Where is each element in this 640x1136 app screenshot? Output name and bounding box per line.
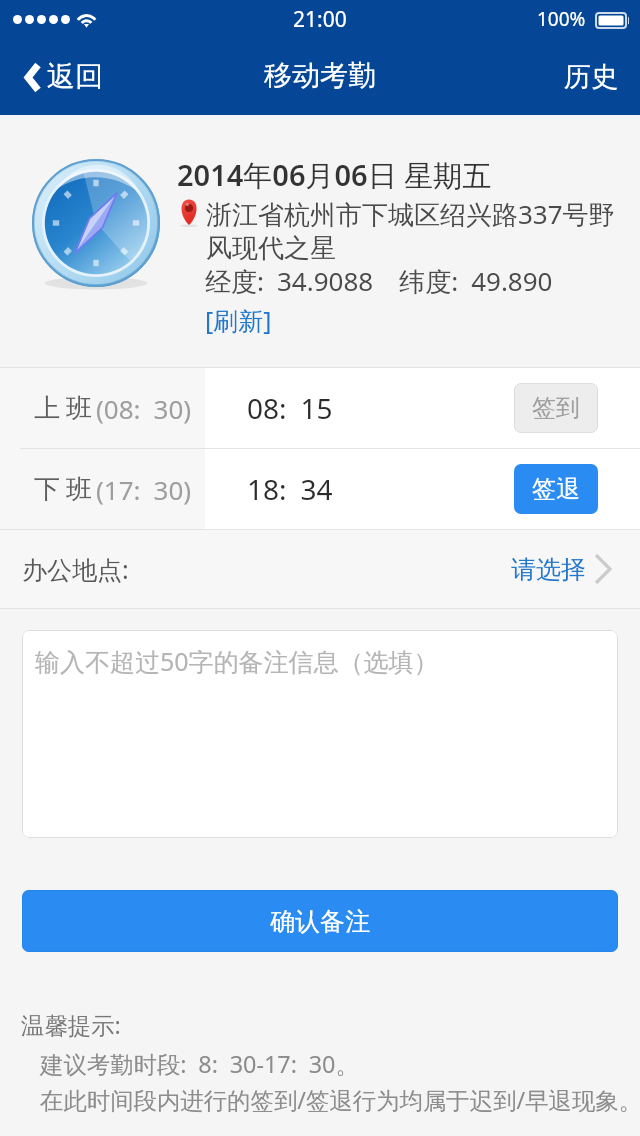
button[interactable]: 输入不超过50字的备注信息（选填） <box>22 630 618 838</box>
staticText: 浙江省杭州市下城区绍兴路337号野风现代之星 <box>206 196 630 265</box>
staticText: 经度: 34.9088 纬度: 49.890 <box>205 263 553 299</box>
staticText: 18: 34 <box>247 470 333 508</box>
staticText: 确认备注 <box>270 906 370 937</box>
staticText: 输入不超过50字的备注信息（选填） <box>35 644 439 678</box>
button[interactable]: 签到 <box>514 383 598 433</box>
staticText: 下班 <box>31 473 95 506</box>
staticText: 2014年06月06日 星期五 <box>177 155 492 195</box>
button[interactable]: [刷新] <box>203 300 274 340</box>
staticText: 历史 <box>564 60 618 94</box>
other: Back <box>25 62 41 93</box>
staticText: 08: 15 <box>247 389 333 427</box>
staticText: 21:00 <box>293 5 347 34</box>
button[interactable]: 办公地点: <box>0 530 640 608</box>
staticText: (08: 30) <box>96 391 192 426</box>
staticText: 上班 <box>31 392 95 425</box>
staticText: 移动考勤 <box>264 58 376 93</box>
staticText: 100% <box>537 6 586 32</box>
staticText: 在此时间段内进行的签到/签退行为均属于迟到/早退现象。 <box>40 1084 640 1116</box>
button[interactable]: 历史 <box>544 49 640 107</box>
button[interactable]: 签退 <box>514 464 598 514</box>
staticText: 温馨提示: <box>21 1009 133 1041</box>
button[interactable]: 确认备注 <box>22 890 618 952</box>
staticText: 建议考勤时段: 8: 30-17: 30。 <box>40 1048 359 1080</box>
staticText: 请选择 <box>511 554 586 585</box>
staticText: 签退 <box>532 474 580 504</box>
staticText: 返回 <box>47 59 103 94</box>
staticText: [刷新] <box>205 303 272 337</box>
button[interactable]: Back <box>0 50 119 105</box>
staticText: (17: 30) <box>96 472 192 507</box>
staticText: 签到 <box>532 393 580 423</box>
staticText: 办公地点: <box>22 552 142 586</box>
